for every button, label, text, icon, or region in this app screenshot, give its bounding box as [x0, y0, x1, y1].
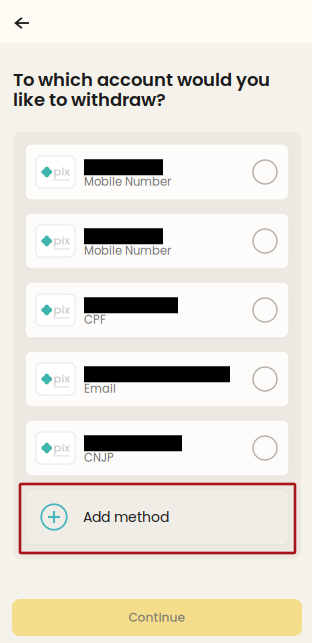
staticText: CPF	[84, 312, 106, 328]
staticText: Continue	[128, 609, 185, 626]
staticText: pix	[53, 302, 69, 317]
button[interactable]: pix	[25, 213, 289, 269]
staticText: Add method	[83, 507, 169, 527]
staticText: Email	[84, 381, 116, 397]
staticText: CNJP	[84, 450, 114, 466]
staticText: like to withdraw?	[13, 87, 166, 112]
staticText: pix	[53, 371, 69, 386]
button[interactable]: pix	[25, 420, 289, 476]
staticText: pix	[53, 440, 69, 455]
staticText: Mobile Number	[84, 174, 171, 190]
staticText: pix	[53, 164, 69, 179]
button[interactable]: Continue	[12, 599, 302, 636]
button[interactable]: pix	[25, 351, 289, 407]
button[interactable]: pix	[25, 282, 289, 338]
button[interactable]: Back	[0, 0, 41, 43]
staticText: To which account would you	[13, 67, 270, 92]
button[interactable]: Add method	[25, 489, 289, 545]
staticText: pix	[53, 233, 69, 248]
button[interactable]: pix	[25, 144, 289, 200]
staticText: Mobile Number	[84, 243, 171, 259]
